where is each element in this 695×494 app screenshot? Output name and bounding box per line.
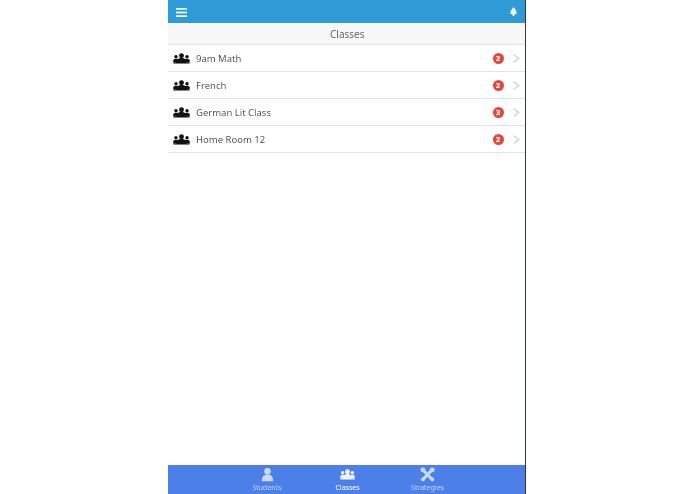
button[interactable]: Strategies bbox=[387, 465, 467, 494]
staticText: Strategies bbox=[411, 483, 444, 493]
button[interactable]: Classes bbox=[307, 465, 387, 494]
staticText: Home Room 12 bbox=[196, 133, 266, 146]
button[interactable]: Open navigation menu bbox=[172, 3, 190, 21]
staticText: German Lit Class bbox=[196, 106, 271, 119]
staticText: French bbox=[196, 79, 227, 92]
staticText: Students bbox=[252, 483, 282, 493]
staticText: 9am Math bbox=[196, 52, 242, 65]
staticText: Classes bbox=[335, 483, 360, 493]
button[interactable]: French bbox=[168, 72, 526, 99]
staticText: 2 bbox=[496, 54, 501, 64]
button[interactable]: 9am Math bbox=[168, 45, 526, 72]
staticText: Classes bbox=[330, 27, 365, 41]
staticText: 2 bbox=[496, 81, 501, 91]
staticText: 2 bbox=[496, 135, 501, 145]
button[interactable]: Students bbox=[227, 465, 307, 494]
button[interactable]: German Lit Class bbox=[168, 99, 526, 126]
button[interactable]: Home Room 12 bbox=[168, 126, 526, 153]
button[interactable]: Notifications bbox=[504, 3, 522, 21]
staticText: 3 bbox=[496, 108, 501, 118]
